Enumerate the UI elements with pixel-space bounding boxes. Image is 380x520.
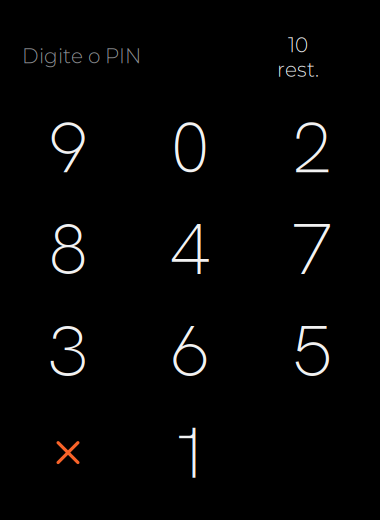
button[interactable]: 0: [129, 96, 251, 198]
staticText: Digite o PIN: [22, 44, 141, 68]
button[interactable]: 7: [251, 198, 373, 300]
button[interactable]: 3: [7, 300, 129, 402]
staticText: 9: [48, 100, 88, 194]
button[interactable]: 5: [251, 300, 373, 402]
button[interactable]: 6: [129, 300, 251, 402]
staticText: 1: [170, 406, 210, 499]
button[interactable]: 2: [251, 96, 373, 198]
staticText: 8: [48, 202, 88, 296]
button[interactable]: 1: [129, 402, 251, 503]
staticText: 4: [170, 202, 210, 296]
staticText: 3: [48, 304, 88, 398]
staticText: 10: [288, 33, 308, 57]
staticText: rest.: [277, 57, 319, 82]
button[interactable]: 4: [129, 198, 251, 300]
staticText: 5: [292, 304, 332, 398]
button[interactable]: 9: [7, 96, 129, 198]
staticText: 7: [292, 202, 332, 296]
staticText: 2: [292, 100, 332, 194]
staticText: 0: [170, 100, 210, 194]
button[interactable]: Apagar: [7, 402, 129, 503]
button[interactable]: 8: [7, 198, 129, 300]
staticText: 6: [170, 304, 210, 398]
